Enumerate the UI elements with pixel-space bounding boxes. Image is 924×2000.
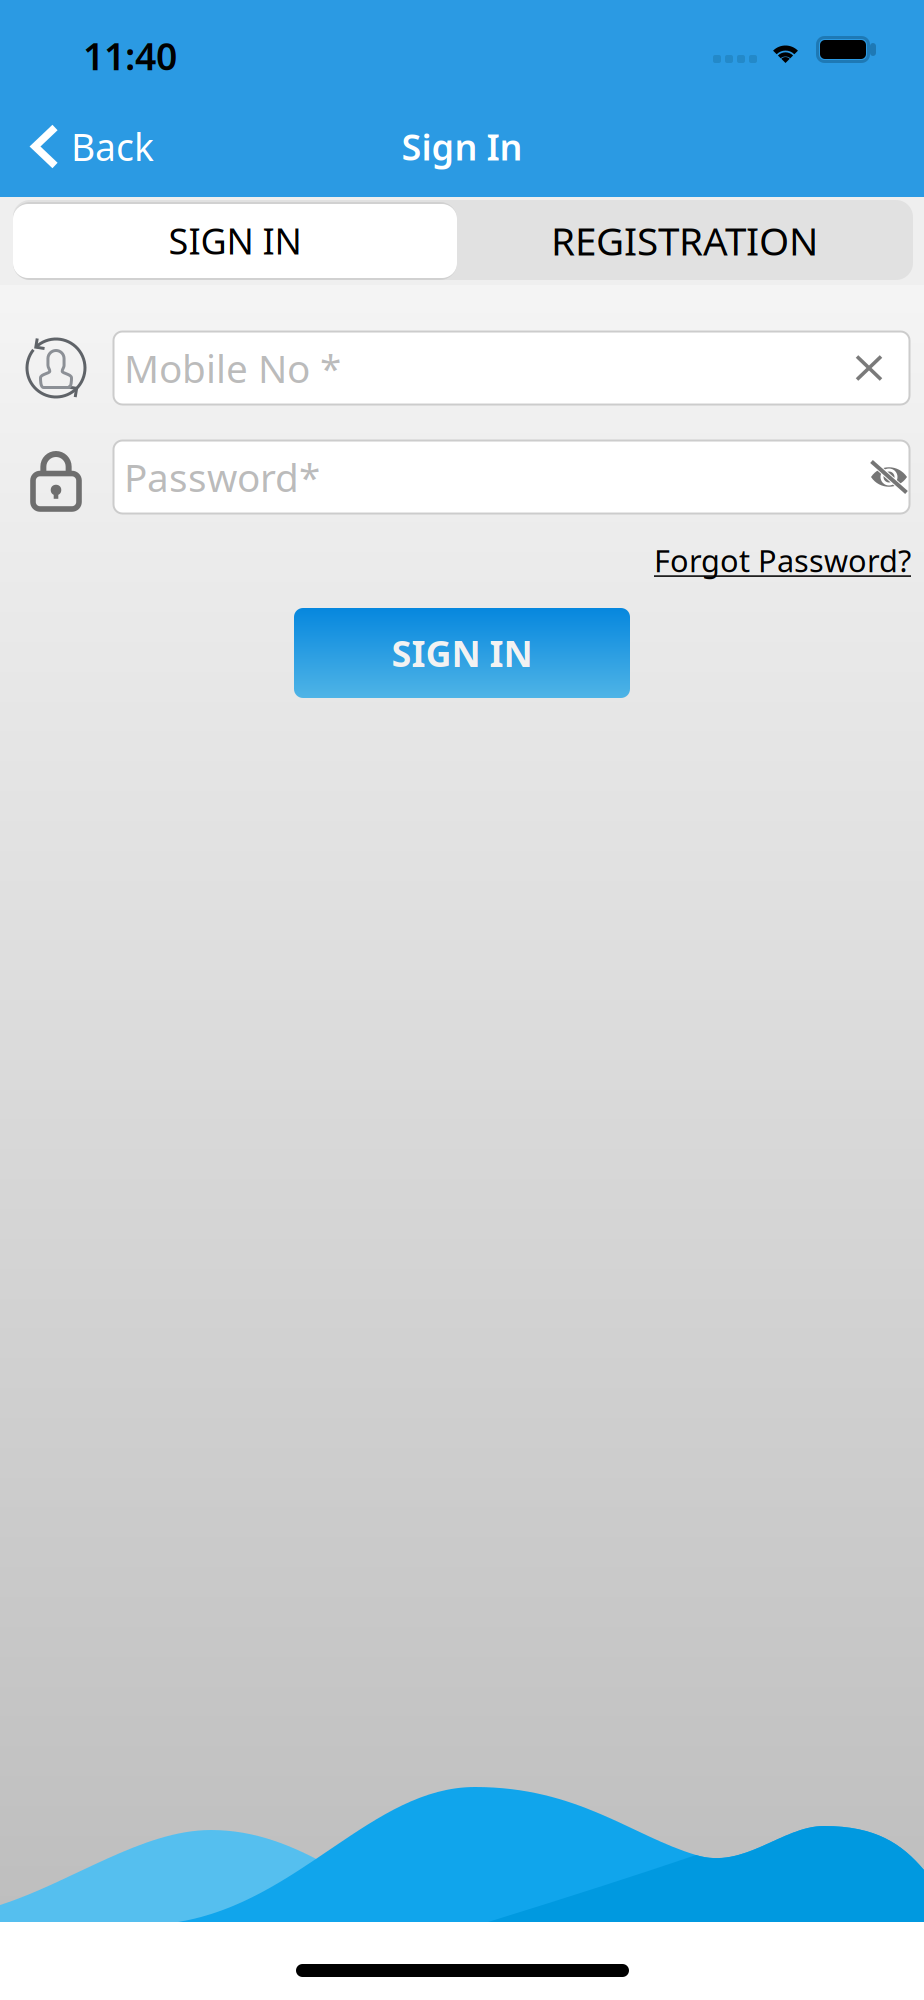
staticText: 11:40 bbox=[83, 31, 177, 81]
button[interactable]: SIGN IN bbox=[13, 198, 457, 283]
button[interactable]: Clear bbox=[835, 334, 910, 401]
button[interactable]: SIGN IN bbox=[294, 608, 630, 698]
button[interactable]: Show password bbox=[857, 440, 910, 514]
staticText: SIGN IN bbox=[168, 217, 301, 264]
button[interactable]: Forgot Password? bbox=[641, 530, 924, 591]
staticText: Password* bbox=[124, 451, 320, 503]
button[interactable]: Back bbox=[0, 106, 170, 187]
staticText: Back bbox=[71, 122, 154, 171]
staticText: Forgot Password? bbox=[654, 540, 911, 581]
staticText: REGISTRATION bbox=[551, 215, 818, 266]
staticText: Mobile No * bbox=[124, 342, 341, 394]
staticText: Sign In bbox=[401, 123, 522, 170]
button[interactable]: REGISTRATION bbox=[457, 198, 912, 283]
staticText: SIGN IN bbox=[391, 629, 532, 677]
